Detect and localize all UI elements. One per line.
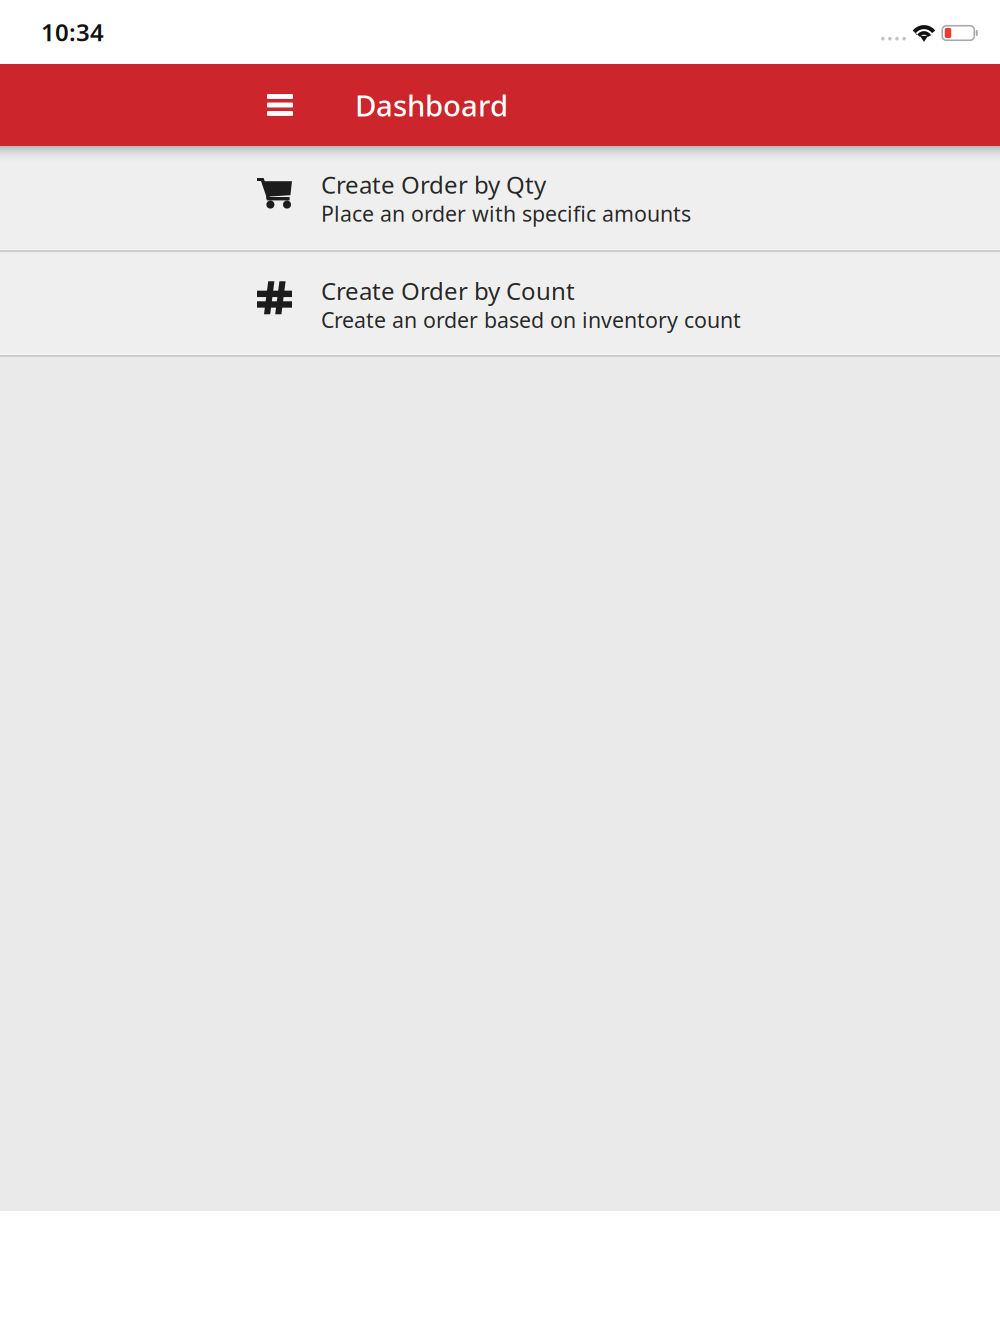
- staticText: Create an order based on inventory count: [321, 305, 741, 334]
- staticText: Create Order by Qty: [321, 168, 546, 200]
- staticText: Dashboard: [355, 85, 508, 124]
- button[interactable]: Create Order by Qty: [0, 146, 1000, 249]
- button[interactable]: Menu: [253, 73, 307, 137]
- staticText: Place an order with specific amounts: [321, 199, 691, 228]
- staticText: Create Order by Count: [321, 275, 575, 306]
- staticText: 10:34: [41, 16, 104, 48]
- button[interactable]: Create Order by Count: [0, 253, 1000, 354]
